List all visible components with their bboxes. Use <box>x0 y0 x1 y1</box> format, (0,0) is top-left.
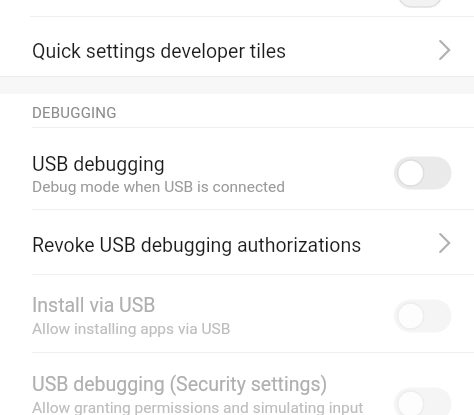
button[interactable] <box>0 128 474 209</box>
staticText: Allow installing apps via USB <box>32 320 231 338</box>
button[interactable] <box>0 210 474 274</box>
staticText: Quick settings developer tiles <box>32 40 287 63</box>
staticText: USB debugging <box>32 153 165 176</box>
button[interactable] <box>0 275 474 352</box>
button[interactable] <box>0 353 474 415</box>
staticText: USB debugging (Security settings) <box>32 373 328 396</box>
staticText: DEBUGGING <box>32 104 117 122</box>
staticText: Revoke USB debugging authorizations <box>32 234 362 257</box>
staticText: Install via USB <box>32 294 156 317</box>
button[interactable] <box>0 17 474 76</box>
staticText: Allow granting permissions and simulatin… <box>32 399 364 415</box>
staticText: Debug mode when USB is connected <box>32 178 286 196</box>
